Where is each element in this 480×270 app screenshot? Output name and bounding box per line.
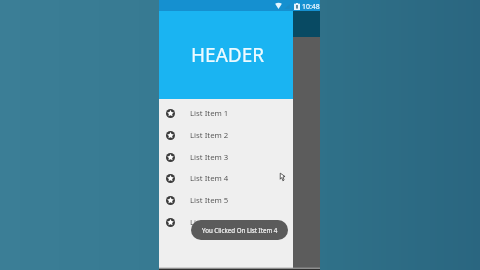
staticText: List Item 5: [190, 195, 229, 206]
staticText: List Item 2: [190, 130, 229, 141]
button[interactable]: List Item 4: [159, 167, 293, 189]
staticText: You Clicked On List Item 4: [202, 226, 278, 234]
other: Battery: [294, 3, 300, 10]
staticText: List Item 6: [190, 217, 229, 228]
staticText: 10:48: [302, 2, 320, 11]
button[interactable]: List Item 5: [159, 189, 293, 211]
button[interactable]: List Item 2: [159, 124, 293, 146]
other: Wifi: [275, 2, 282, 9]
staticText: List Item 4: [190, 173, 229, 184]
button[interactable]: List Item 3: [159, 146, 293, 168]
staticText: HEADER: [191, 42, 265, 68]
staticText: List Item 3: [190, 152, 229, 163]
button[interactable]: List Item 6: [159, 211, 293, 233]
staticText: List Item 1: [190, 108, 229, 119]
button[interactable]: List Item 1: [159, 102, 293, 124]
